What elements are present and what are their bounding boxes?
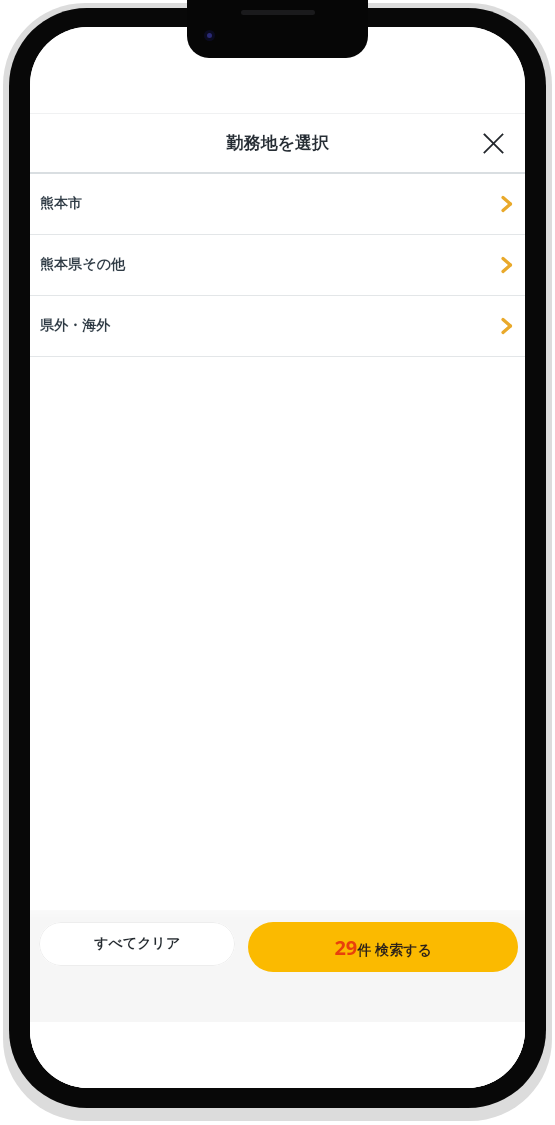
staticText: 29件 検索する [334, 934, 432, 961]
button[interactable]: すべてクリア [39, 922, 235, 966]
staticText: 県外・海外 [40, 317, 110, 335]
button[interactable]: 閉じる [469, 119, 517, 167]
button[interactable]: 29件 検索する [248, 922, 518, 972]
staticText: 熊本市 [40, 195, 82, 213]
staticText: すべてクリア [94, 935, 180, 953]
button[interactable]: 県外・海外 [30, 296, 525, 356]
staticText: 熊本県その他 [40, 256, 125, 274]
button[interactable]: 熊本県その他 [30, 235, 525, 295]
button[interactable]: 熊本市 [30, 174, 525, 234]
staticText: 勤務地を選択 [226, 133, 329, 154]
